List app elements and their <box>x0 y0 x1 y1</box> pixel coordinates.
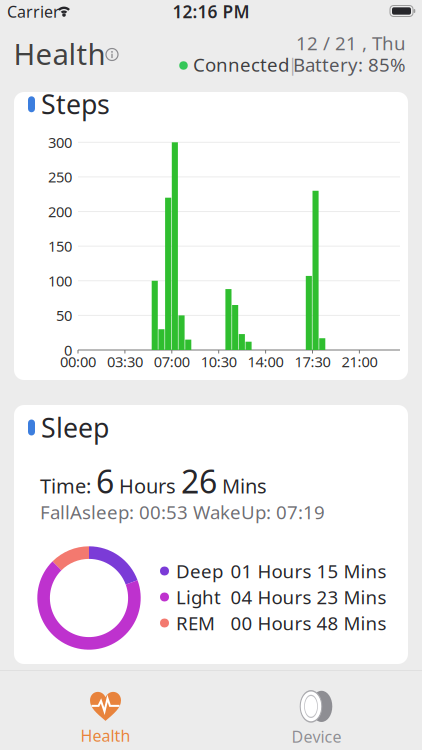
staticText: 00:00 <box>60 352 96 371</box>
staticText: 0 <box>64 340 72 360</box>
staticText: 12 / 21 , Thu <box>296 31 406 55</box>
staticText: 50 <box>56 306 72 325</box>
staticText: Steps <box>41 86 110 122</box>
staticText: 07:00 <box>154 352 190 371</box>
staticText: Time: <box>40 472 96 499</box>
staticText: 17:30 <box>294 352 330 371</box>
staticText: Health <box>80 725 130 746</box>
staticText: Connected <box>193 52 289 77</box>
staticText: Battery: 85% <box>293 52 406 77</box>
button[interactable]: Device <box>256 689 376 749</box>
staticText: 200 <box>48 202 72 221</box>
staticText: 300 <box>48 133 72 152</box>
staticText: 250 <box>48 167 72 187</box>
staticText: 100 <box>48 271 72 290</box>
staticText: 21:00 <box>341 352 377 371</box>
staticText: 01 Hours 15 Mins <box>230 559 386 583</box>
staticText: | <box>287 52 297 77</box>
staticText: Device <box>291 726 341 747</box>
button[interactable]: Info <box>106 48 118 60</box>
staticText: FallAsleep: 00:53 <box>40 500 188 524</box>
staticText: 03:30 <box>107 352 143 371</box>
staticText: Deep <box>176 559 223 583</box>
staticText: Mins <box>217 472 267 499</box>
staticText: 26 <box>181 460 217 502</box>
staticText: 00 Hours 48 Mins <box>230 611 386 635</box>
staticText: 10:30 <box>201 352 237 371</box>
staticText: 14:00 <box>248 352 284 371</box>
staticText: Sleep <box>41 410 109 445</box>
staticText: Light <box>176 585 221 609</box>
staticText: Carrier <box>7 1 60 22</box>
staticText: 150 <box>48 236 72 256</box>
staticText: 04 Hours 23 Mins <box>230 585 386 609</box>
button[interactable]: Health <box>45 689 165 749</box>
staticText: Health <box>13 34 105 73</box>
staticText: 12:16 PM <box>172 0 249 23</box>
staticText: 6 <box>96 460 114 502</box>
staticText: REM <box>176 611 215 635</box>
staticText: Hours <box>114 472 181 499</box>
staticText: WakeUp: 07:19 <box>193 500 325 524</box>
